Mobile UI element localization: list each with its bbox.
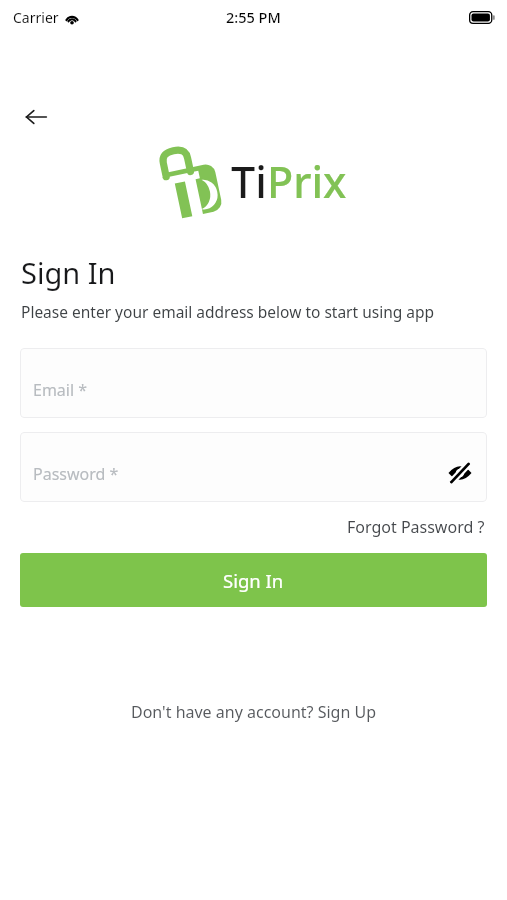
button[interactable]: Email * — [20, 348, 487, 418]
staticText: Email * — [33, 379, 88, 401]
staticText: 2:55 PM — [226, 7, 281, 27]
staticText: Please enter your email address below to… — [21, 301, 435, 322]
staticText: Ti — [231, 152, 267, 211]
button[interactable]: Password * — [20, 432, 487, 502]
staticText: Prix — [267, 152, 347, 211]
button[interactable]: Forgot Password ? — [345, 512, 487, 542]
button[interactable]: Sign In — [20, 553, 487, 607]
staticText: Sign In — [21, 253, 116, 292]
button[interactable]: Show password — [442, 455, 478, 491]
staticText: Forgot Password ? — [347, 516, 485, 538]
button[interactable]: Back — [14, 95, 58, 139]
staticText: Don't have any account? Sign Up — [131, 701, 376, 723]
button[interactable]: Don't have any account? Sign Up — [123, 695, 384, 729]
staticText: Carrier — [13, 8, 59, 27]
staticText: Password * — [33, 463, 119, 485]
staticText: Sign In — [223, 568, 284, 593]
